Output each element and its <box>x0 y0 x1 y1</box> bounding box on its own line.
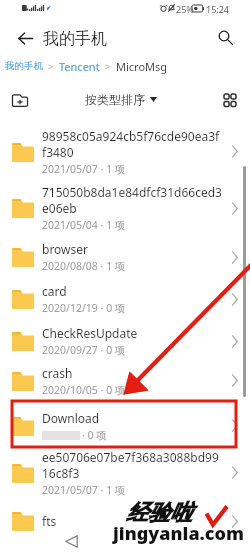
staticText: ee50706e07be7f368a3088bd99 <box>42 449 219 465</box>
button[interactable]: Back <box>65 535 78 548</box>
staticText: crash <box>42 365 73 381</box>
staticText: fts <box>42 513 57 529</box>
staticText: > <box>100 60 116 73</box>
staticText: 经验啦 <box>126 499 192 527</box>
staticText: 715050b8da1e84dfcf31d66ced3 <box>42 184 222 200</box>
staticText: 2021/05/04 · 1 项 <box>42 218 126 232</box>
staticText: 2020/10/05 · 0 项 <box>42 383 126 397</box>
staticText: 2021/05/07 · 1 项 <box>42 162 126 176</box>
staticText: Download <box>42 410 100 426</box>
button[interactable]: fts <box>0 500 250 542</box>
staticText: 98958c05a924cb5f76cde90ea3f <box>42 128 220 144</box>
staticText: 15:24 <box>206 3 230 15</box>
button[interactable]: Search <box>212 26 236 50</box>
staticText: 2020/09/27 · 0 项 <box>42 343 126 357</box>
button[interactable]: 715050b8da1e84dfcf31d66ced3 <box>0 184 250 232</box>
staticText: e06eb <box>42 200 77 216</box>
button[interactable]: 98958c05a924cb5f76cde90ea3f <box>0 123 250 180</box>
button[interactable]: 按类型排序 <box>85 92 157 107</box>
button[interactable]: New folder <box>8 88 32 112</box>
staticText: 按类型排序 <box>85 92 145 107</box>
button[interactable]: Download <box>0 402 250 449</box>
staticText: f3480 <box>42 144 74 160</box>
staticText: CheckResUpdate <box>42 325 138 341</box>
staticText: 25% <box>176 3 194 15</box>
button[interactable]: MicroMsg <box>116 59 168 74</box>
button[interactable]: crash <box>0 358 250 403</box>
button[interactable]: ee50706e07be7f368a3088bd99 <box>0 448 250 497</box>
staticText: browser <box>42 241 89 257</box>
staticText: card <box>42 283 67 299</box>
button[interactable]: browser <box>0 236 250 278</box>
button[interactable]: card <box>0 278 250 320</box>
staticText: jingyanla.com <box>113 521 244 546</box>
button[interactable]: 我的手机 <box>5 60 43 72</box>
staticText: 2020/08/08 · 1 项 <box>42 259 126 273</box>
staticText: 我的手机 <box>43 29 107 49</box>
button[interactable]: CheckResUpdate <box>0 321 250 361</box>
staticText: · 0 项 <box>82 428 107 442</box>
staticText: > <box>43 60 59 73</box>
button[interactable]: Back <box>13 26 37 50</box>
staticText: 2020/12/19 · 0 项 <box>42 301 126 315</box>
staticText: 2021/05/07 · 1 项 <box>42 483 126 497</box>
button[interactable]: Grid view <box>218 88 242 112</box>
staticText: 16c8f3 <box>42 465 80 481</box>
button[interactable]: Tencent <box>59 59 100 74</box>
